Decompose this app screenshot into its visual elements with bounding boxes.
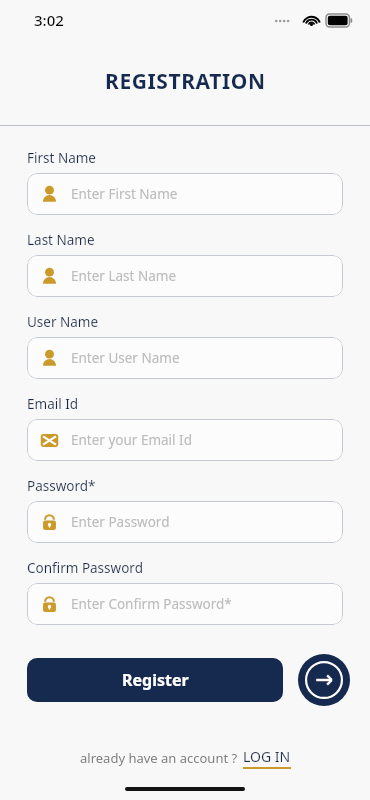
staticText: REGISTRATION (105, 67, 266, 96)
staticText: Email Id (27, 395, 79, 413)
staticText: Confirm Password (27, 559, 143, 577)
staticText: Register (122, 669, 189, 691)
staticText: already have an account ? (80, 749, 238, 767)
staticText: Enter Confirm Password* (71, 595, 232, 613)
button[interactable]: Register (27, 658, 283, 702)
staticText: Password* (27, 477, 96, 495)
staticText: LOG IN (243, 747, 291, 766)
button[interactable]: Enter First Name (27, 173, 343, 215)
staticText: Enter Password (71, 513, 170, 531)
button[interactable]: Next (298, 654, 350, 706)
button[interactable]: Enter Password (27, 501, 343, 543)
staticText: Last Name (27, 231, 95, 249)
staticText: Enter Last Name (71, 267, 176, 285)
staticText: First Name (27, 149, 96, 167)
staticText: Enter your Email Id (71, 431, 192, 449)
staticText: User Name (27, 313, 99, 331)
staticText: Enter User Name (71, 349, 180, 367)
button[interactable]: Enter User Name (27, 337, 343, 379)
staticText: 3:02 (34, 10, 64, 30)
staticText: Enter First Name (71, 185, 178, 203)
button[interactable]: Enter your Email Id (27, 419, 343, 461)
button[interactable]: Enter Last Name (27, 255, 343, 297)
button[interactable]: already have an account ? (0, 747, 370, 769)
button[interactable]: Enter Confirm Password* (27, 583, 343, 625)
